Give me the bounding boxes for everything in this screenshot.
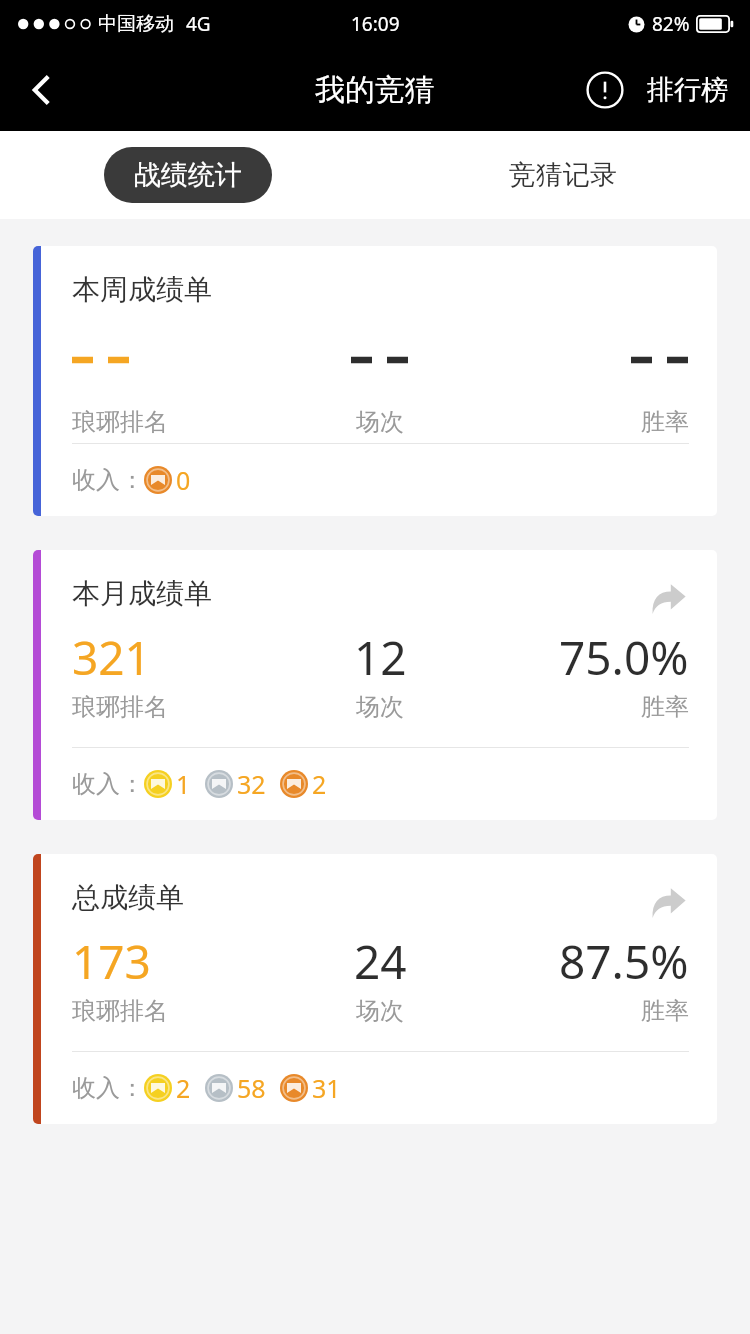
staticText: 173 <box>72 930 151 992</box>
button[interactable]: 总成绩单 <box>33 854 717 1124</box>
staticText: 82% <box>652 11 690 37</box>
staticText: 战绩统计 <box>134 158 242 192</box>
button[interactable]: 竞猜记录 <box>375 131 750 219</box>
staticText: 琅琊排名 <box>72 692 168 722</box>
staticText: 24 <box>354 930 407 992</box>
staticText: 4G <box>186 11 211 37</box>
staticText: 琅琊排名 <box>72 996 168 1026</box>
staticText: 场次 <box>356 407 404 437</box>
staticText: 本周成绩单 <box>72 272 212 307</box>
staticText: 16:09 <box>351 11 400 37</box>
button[interactable]: 本周成绩单 <box>33 246 717 516</box>
staticText: 1 <box>176 767 191 801</box>
staticText: 收入： <box>72 769 144 799</box>
button[interactable]: Share <box>645 576 689 620</box>
staticText: 琅琊排名 <box>72 407 168 437</box>
staticText: 75.0% <box>559 626 689 688</box>
staticText: 58 <box>237 1071 266 1105</box>
staticText: 我的竞猜 <box>315 71 435 109</box>
staticText: 竞猜记录 <box>509 158 617 192</box>
button[interactable]: Share <box>645 880 689 924</box>
button[interactable]: 本月成绩单 <box>33 550 717 820</box>
staticText: 场次 <box>356 692 404 722</box>
staticText: 12 <box>354 626 407 688</box>
button[interactable]: Back <box>0 48 84 131</box>
staticText: 胜率 <box>641 996 689 1026</box>
staticText: 2 <box>176 1071 191 1105</box>
button[interactable]: 战绩统计 <box>0 131 375 219</box>
staticText: 胜率 <box>641 692 689 722</box>
staticText: 中国移动 <box>98 12 174 36</box>
staticText: 排行榜 <box>647 73 728 107</box>
staticText: 321 <box>72 626 151 688</box>
staticText: 场次 <box>356 996 404 1026</box>
staticText: 31 <box>312 1071 341 1105</box>
staticText: 收入： <box>72 465 144 495</box>
staticText: 32 <box>237 767 266 801</box>
button[interactable]: Info <box>569 48 641 131</box>
button[interactable]: 排行榜 <box>641 48 750 131</box>
staticText: 收入： <box>72 1073 144 1103</box>
staticText: 87.5% <box>559 930 689 992</box>
staticText: 本月成绩单 <box>72 576 212 611</box>
staticText: 2 <box>312 767 327 801</box>
staticText: 总成绩单 <box>72 880 184 915</box>
staticText: 胜率 <box>641 407 689 437</box>
staticText: 0 <box>176 463 191 497</box>
